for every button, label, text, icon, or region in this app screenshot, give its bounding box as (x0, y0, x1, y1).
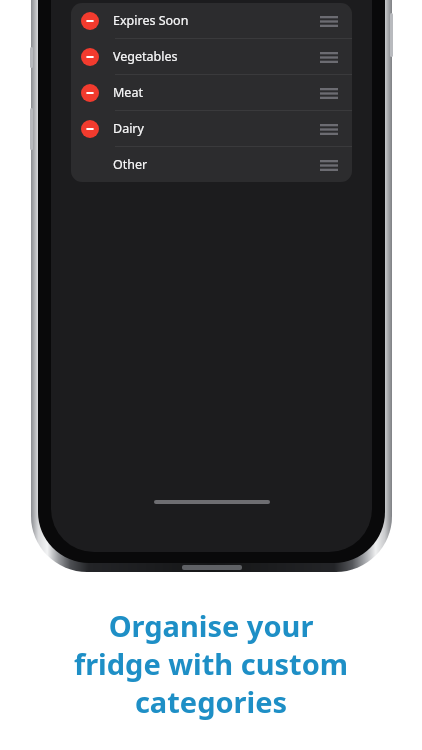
button[interactable]: Remove Dairy (71, 111, 352, 146)
button[interactable]: Remove Vegetables (81, 48, 99, 66)
staticText: Vegetables (113, 48, 178, 65)
button[interactable]: Other (71, 147, 352, 182)
button[interactable]: Remove Meat (71, 75, 352, 110)
staticText: Other (113, 156, 148, 173)
button[interactable]: Remove Dairy (81, 120, 99, 138)
button[interactable]: Reorder Dairy (314, 114, 344, 144)
button[interactable]: Remove Expires Soon (71, 3, 352, 38)
staticText: Organise your fridge with custom categor… (14, 606, 408, 722)
button[interactable]: Reorder Expires Soon (314, 6, 344, 36)
button[interactable]: Reorder Other (314, 150, 344, 180)
staticText: Dairy (113, 120, 144, 137)
button[interactable]: Remove Vegetables (71, 39, 352, 74)
staticText: Meat (113, 84, 143, 101)
button[interactable]: Remove Meat (81, 84, 99, 102)
staticText: Expires Soon (113, 12, 189, 29)
button[interactable]: Reorder Vegetables (314, 42, 344, 72)
button[interactable]: Remove Expires Soon (81, 12, 99, 30)
button[interactable]: Reorder Meat (314, 78, 344, 108)
